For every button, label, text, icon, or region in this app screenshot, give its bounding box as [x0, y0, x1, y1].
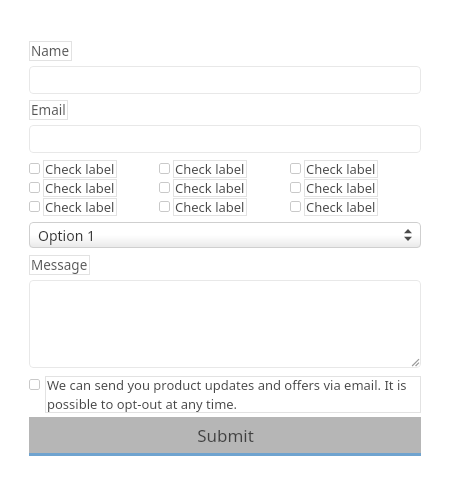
other: Select option	[404, 228, 412, 242]
staticText: We can send you product updates and offe…	[47, 376, 419, 413]
staticText: Submit	[197, 424, 254, 447]
button[interactable]	[29, 125, 421, 153]
button[interactable]: Check label	[290, 178, 378, 197]
staticText: Check label	[306, 160, 376, 178]
button[interactable]: Check label	[290, 197, 378, 216]
staticText: Check label	[306, 179, 376, 197]
staticText: Name	[31, 42, 70, 60]
button[interactable]: Check label	[159, 178, 247, 197]
staticText: Email	[31, 101, 66, 119]
button[interactable]: Check label	[159, 197, 247, 216]
staticText: Message	[31, 256, 88, 274]
staticText: Check label	[45, 198, 115, 216]
button[interactable]: Check label	[29, 159, 117, 178]
staticText: Check label	[45, 179, 115, 197]
button[interactable]: Submit	[29, 417, 421, 453]
staticText: Check label	[306, 198, 376, 216]
button[interactable]	[29, 66, 421, 94]
button[interactable]	[29, 280, 421, 368]
button[interactable]: Check label	[29, 178, 117, 197]
staticText: Option 1	[38, 226, 95, 245]
button[interactable]: We can send you product updates and offe…	[29, 376, 421, 413]
button[interactable]: Option 1	[29, 222, 421, 248]
staticText: Check label	[45, 160, 115, 178]
button[interactable]: Check label	[290, 159, 378, 178]
staticText: Check label	[175, 160, 245, 178]
staticText: Check label	[175, 198, 245, 216]
staticText: Check label	[175, 179, 245, 197]
button[interactable]: Check label	[159, 159, 247, 178]
button[interactable]: Check label	[29, 197, 117, 216]
